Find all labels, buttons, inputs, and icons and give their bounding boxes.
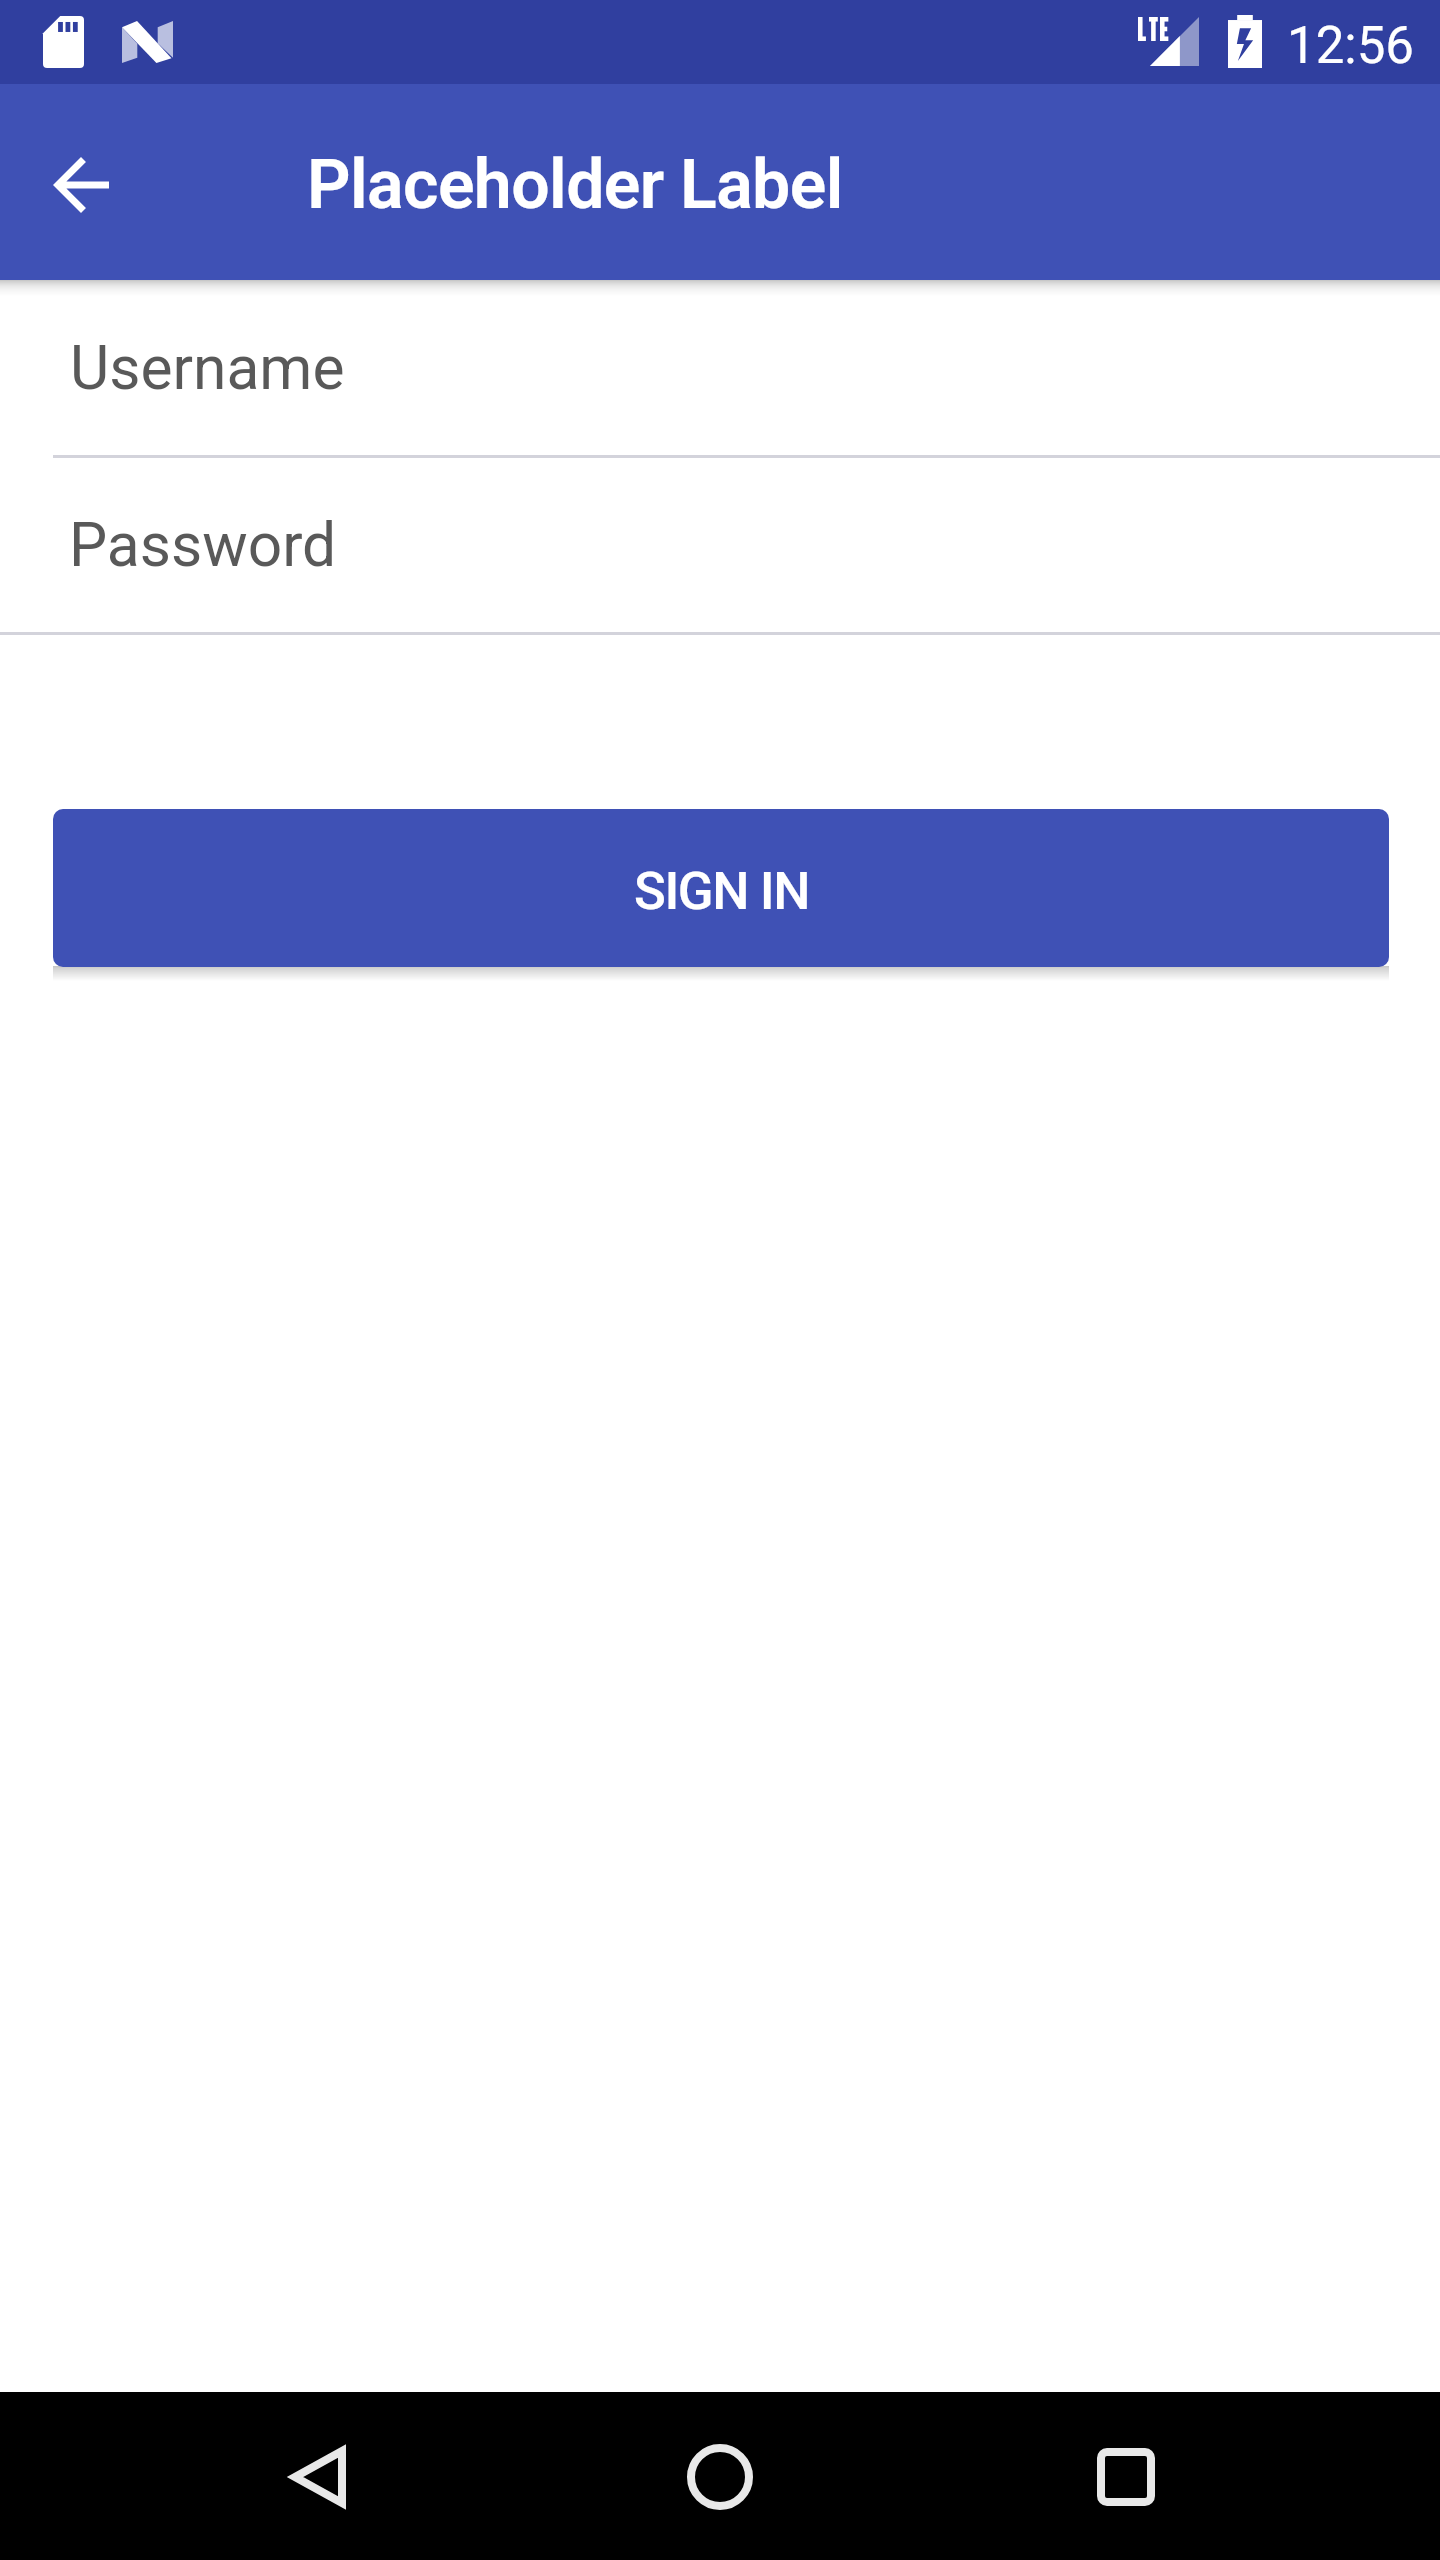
staticText: Password: [69, 510, 337, 581]
staticText: Placeholder Label: [307, 145, 843, 225]
staticText: SIGN IN: [634, 860, 810, 922]
button[interactable]: SIGN IN: [53, 809, 1389, 967]
button[interactable]: Navigate up: [11, 115, 151, 255]
staticText: Username: [70, 333, 345, 404]
button[interactable]: Password: [0, 458, 1440, 635]
button[interactable]: Back: [0, 2392, 480, 2560]
staticText: 12:56: [1287, 16, 1415, 76]
button[interactable]: Home: [480, 2392, 960, 2560]
button[interactable]: Username: [0, 280, 1440, 458]
button[interactable]: Recent apps: [960, 2392, 1440, 2560]
